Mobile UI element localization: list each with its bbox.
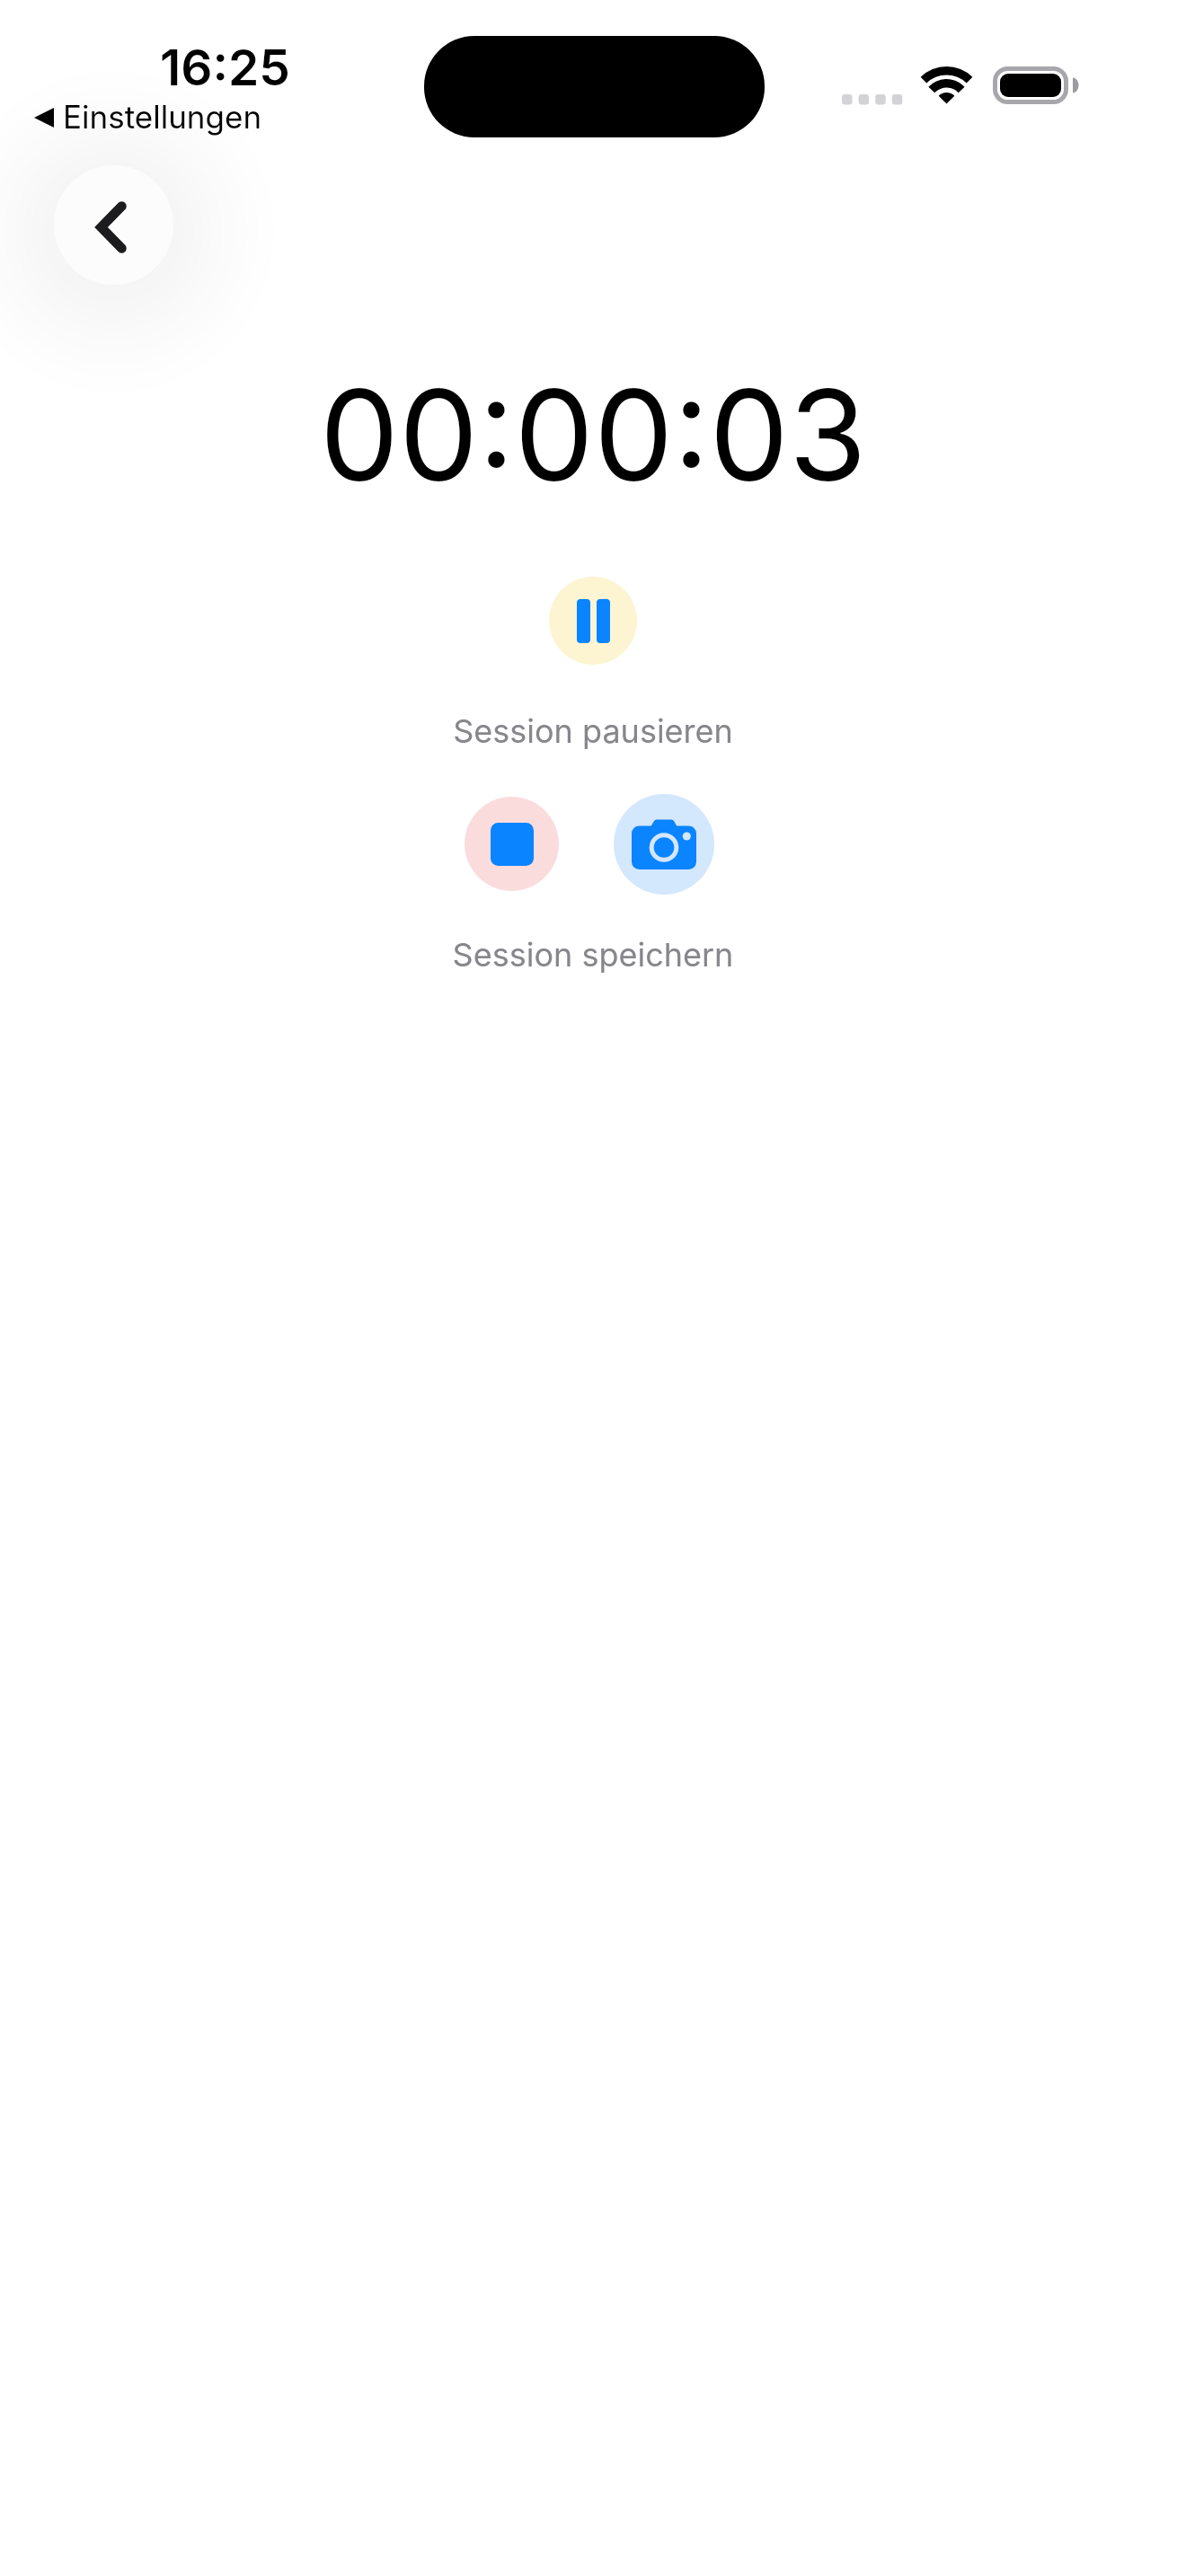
button[interactable]: Zurück [54,165,173,285]
button[interactable]: Session stoppen [465,797,559,891]
staticText: 00:00:03 [0,358,1186,510]
staticText: Session speichern [0,935,1186,975]
staticText: Session pausieren [0,711,1186,751]
staticText: 16:25 [160,38,290,98]
staticText: Einstellungen [63,98,262,136]
button[interactable]: Session pausieren [549,577,637,665]
button[interactable]: Foto aufnehmen [614,794,714,895]
